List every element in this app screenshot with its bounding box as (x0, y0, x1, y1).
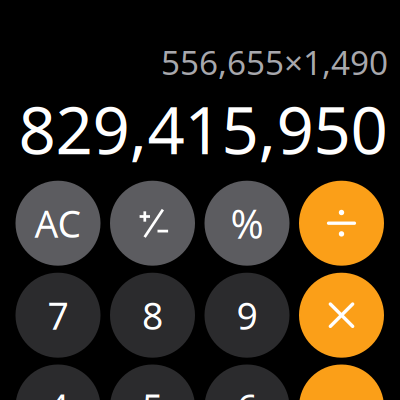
button[interactable]: 5 (110, 364, 195, 400)
button[interactable]: AC (15, 181, 100, 266)
staticText: 9 (236, 290, 257, 340)
staticText: 8 (142, 290, 163, 340)
button[interactable]: Divide (299, 181, 384, 266)
staticText: % (230, 197, 263, 250)
staticText: 556,655×1,490 (161, 40, 388, 84)
button[interactable]: 7 (15, 273, 100, 358)
staticText: 4 (47, 382, 68, 400)
button[interactable]: Multiply (299, 273, 384, 358)
staticText: 5 (142, 382, 163, 400)
staticText: AC (34, 198, 81, 248)
button[interactable]: Subtract (299, 364, 384, 400)
staticText: 6 (236, 382, 257, 400)
button[interactable]: 4 (15, 364, 100, 400)
button[interactable]: 6 (204, 364, 289, 400)
staticText: 7 (47, 290, 68, 340)
button[interactable]: 8 (110, 273, 195, 358)
button[interactable]: % (204, 181, 289, 266)
button[interactable]: 9 (204, 273, 289, 358)
staticText: 829,415,950 (18, 86, 387, 172)
button[interactable]: Plus minus (110, 181, 195, 266)
